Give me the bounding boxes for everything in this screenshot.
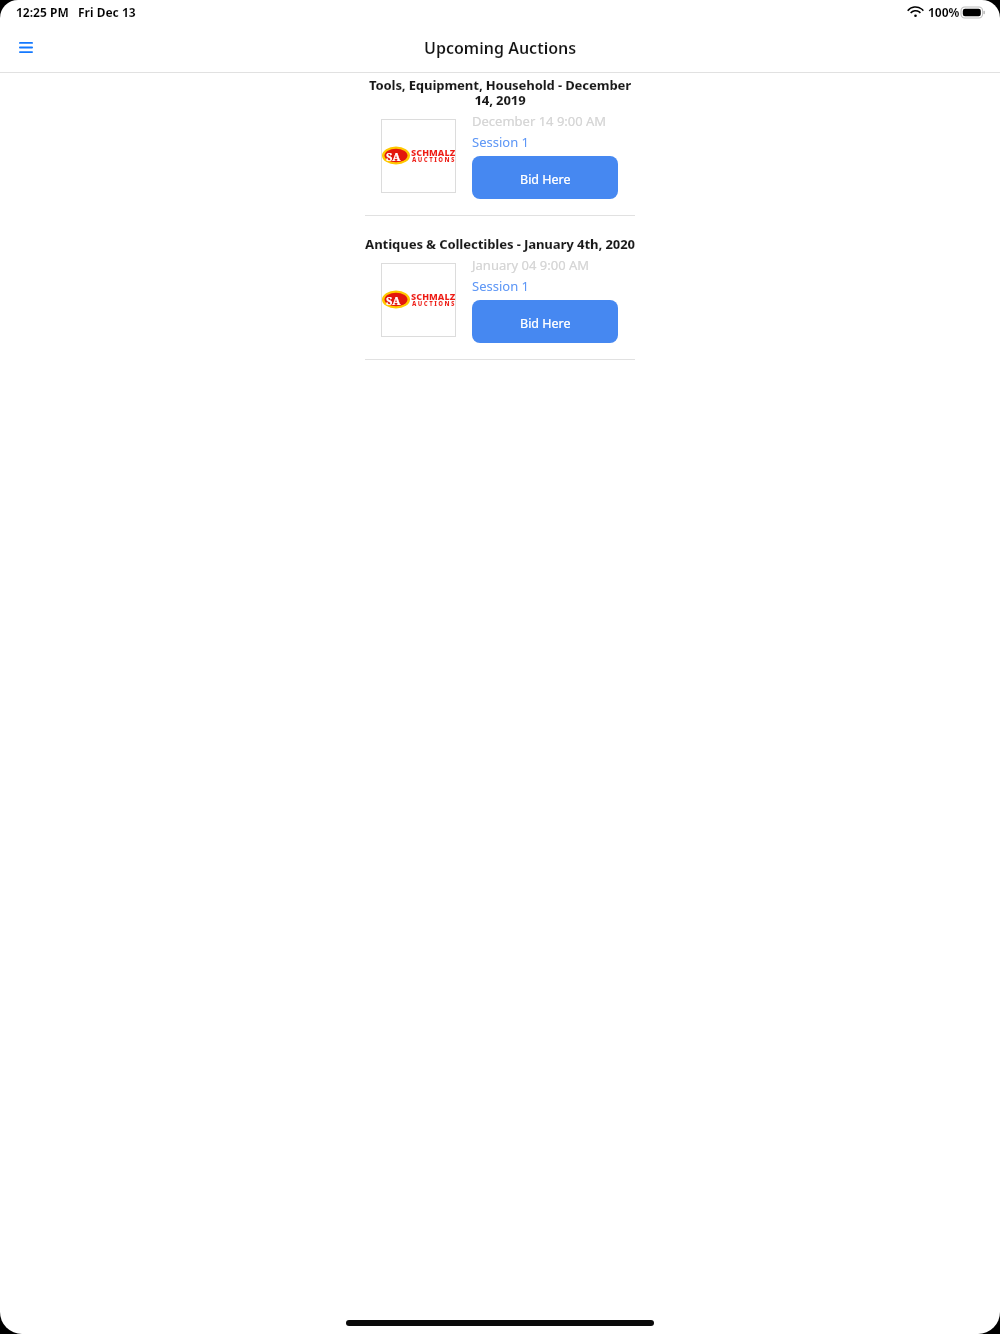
button[interactable]: Schmalz Auctions logo: [381, 263, 456, 337]
button[interactable]: Bid Here: [472, 156, 618, 199]
staticText: SCHMALZ: [411, 290, 456, 302]
button[interactable]: Session 1: [472, 277, 529, 295]
staticText: Bid Here: [520, 171, 571, 188]
staticText: AUCTIONS: [412, 156, 456, 164]
staticText: SCHMALZ: [411, 146, 456, 158]
button[interactable]: Tools, Equipment, Household - December 1…: [363, 76, 637, 109]
staticText: SA: [386, 149, 401, 164]
staticText: 12:25 PM: [16, 4, 69, 20]
button[interactable]: Schmalz Auctions logo: [381, 119, 456, 193]
button[interactable]: Menu: [9, 30, 43, 64]
button[interactable]: Session 1: [472, 133, 529, 151]
staticText: January 04 9:00 AM: [472, 256, 590, 274]
staticText: SA: [386, 293, 401, 308]
staticText: Session 1: [472, 277, 529, 295]
staticText: 100%: [928, 4, 960, 20]
button[interactable]: Bid Here: [472, 300, 618, 343]
staticText: AUCTIONS: [412, 300, 456, 308]
staticText: Fri Dec 13: [78, 4, 136, 20]
staticText: December 14 9:00 AM: [472, 112, 607, 130]
staticText: Bid Here: [520, 315, 571, 332]
staticText: Upcoming Auctions: [424, 37, 577, 59]
button[interactable]: Antiques & Collectibles - January 4th, 2…: [363, 235, 637, 253]
staticText: Session 1: [472, 133, 529, 151]
